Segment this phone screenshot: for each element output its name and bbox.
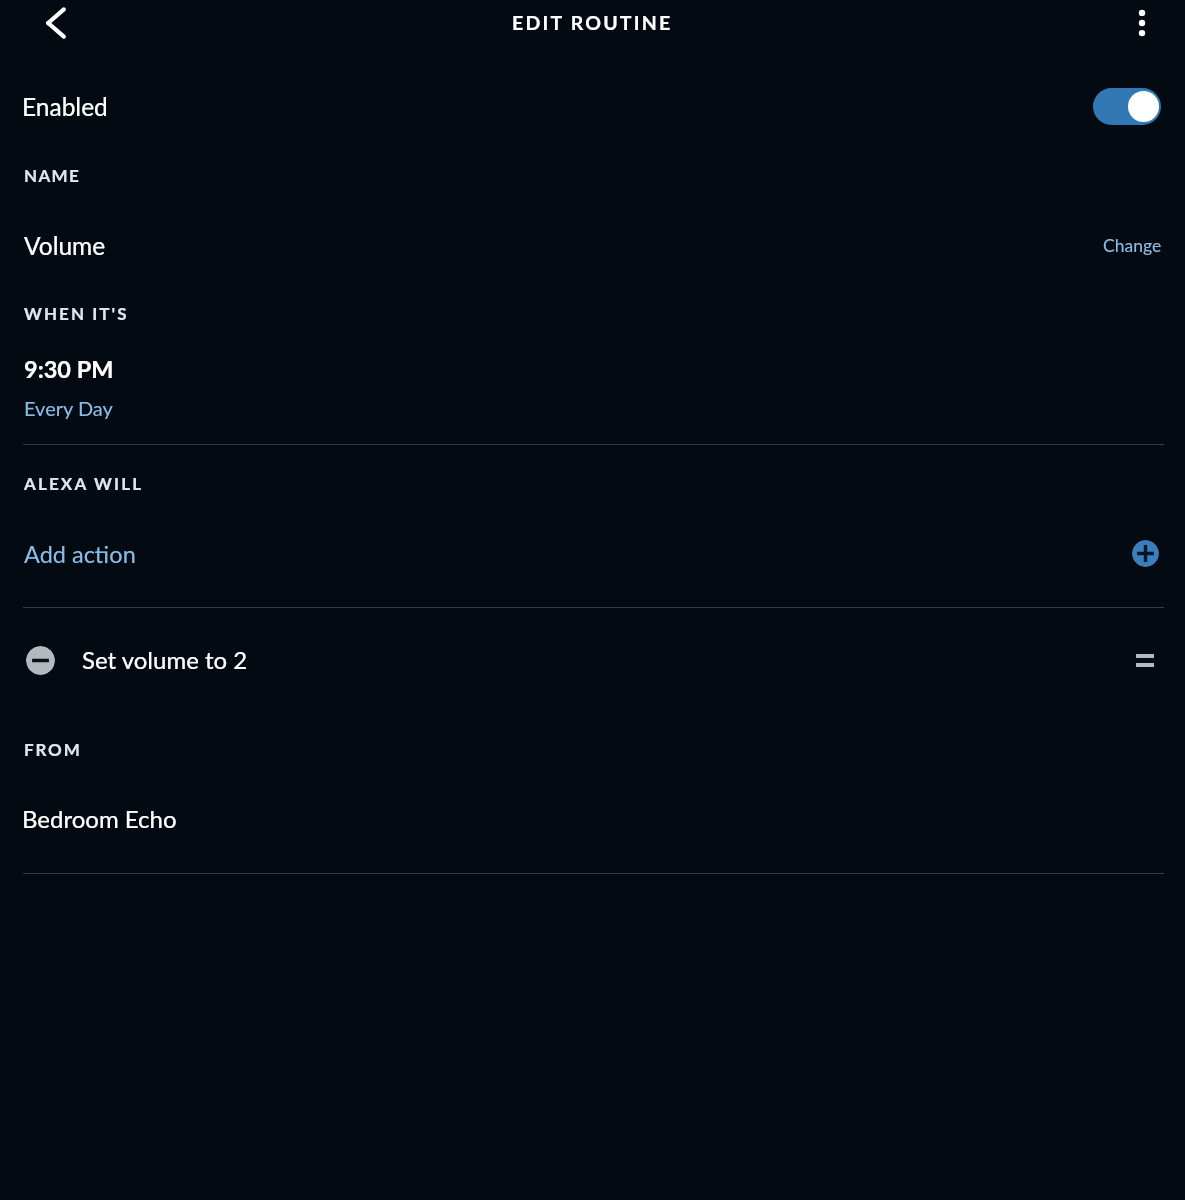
staticText: Every Day <box>24 396 113 420</box>
button[interactable]: Reorder action <box>1136 654 1154 667</box>
button[interactable]: Bedroom Echo <box>0 798 1185 848</box>
staticText: NAME <box>24 165 81 185</box>
staticText: WHEN IT'S <box>24 303 129 323</box>
button[interactable]: Remove action <box>0 626 1185 694</box>
staticText: 9:30 PM <box>24 355 114 383</box>
staticText: ALEXA WILL <box>24 473 144 493</box>
button[interactable]: Enabled <box>0 76 1185 138</box>
staticText: FROM <box>24 739 82 759</box>
staticText: Bedroom Echo <box>22 804 177 833</box>
button[interactable]: Remove action <box>26 646 55 675</box>
staticText: EDIT ROUTINE <box>512 11 673 34</box>
staticText: Set volume to 2 <box>82 645 248 674</box>
button[interactable]: Back <box>28 0 84 51</box>
staticText: Add action <box>24 540 136 568</box>
button[interactable]: Add action <box>0 520 1185 590</box>
button[interactable]: More options <box>1114 0 1170 51</box>
button[interactable]: Add action <box>1132 540 1159 567</box>
staticText: Change <box>1103 235 1162 256</box>
button[interactable]: Volume <box>0 222 1185 272</box>
staticText: Enabled <box>22 92 108 121</box>
button[interactable]: 9:30 PM <box>0 350 1185 432</box>
button[interactable]: Enabled toggle, on <box>1093 88 1161 125</box>
staticText: Volume <box>24 231 106 260</box>
